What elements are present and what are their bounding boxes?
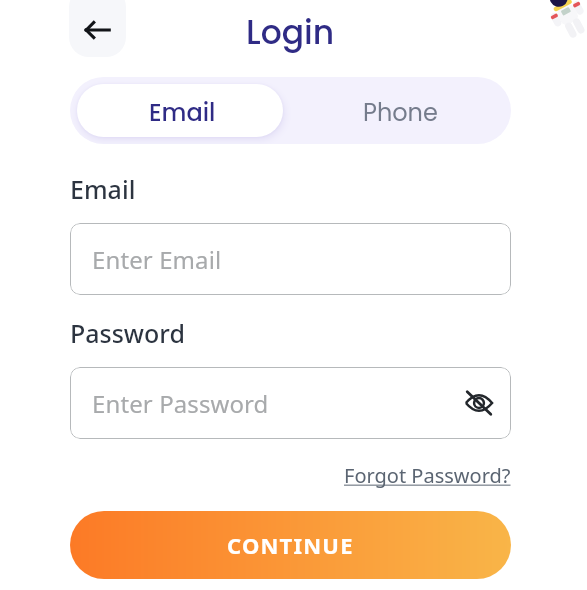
staticText: CONTINUE (227, 530, 354, 560)
staticText: Enter Password (92, 387, 269, 420)
staticText: Enter Email (92, 243, 222, 276)
button[interactable]: Forgot Password? (344, 462, 511, 489)
staticText: Phone (363, 96, 438, 130)
staticText: Email (149, 96, 216, 130)
staticText: Password (70, 316, 185, 350)
staticText: Login (246, 9, 335, 55)
button[interactable]: Enter Password (70, 367, 511, 439)
staticText: Email (70, 172, 136, 206)
button[interactable]: Enter Email (70, 223, 511, 295)
button[interactable]: CONTINUE (70, 511, 511, 579)
button[interactable]: Phone (290, 77, 511, 144)
button[interactable]: Back (69, 0, 126, 57)
button[interactable]: Email (77, 84, 283, 137)
button[interactable]: Show password (461, 385, 497, 421)
